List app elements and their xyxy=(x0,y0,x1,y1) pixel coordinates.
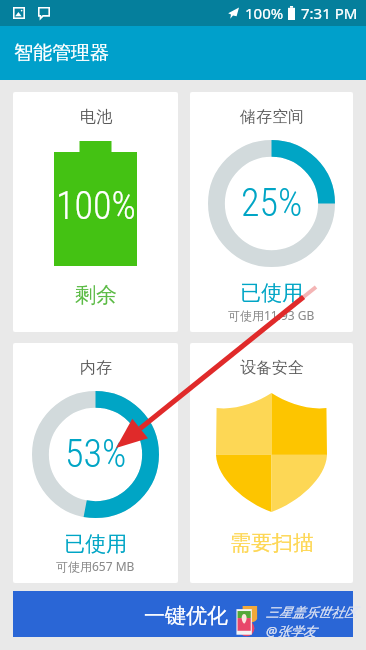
staticText: 已使用 xyxy=(64,531,127,557)
button[interactable]: 电池 xyxy=(13,92,178,332)
staticText: @张学友 xyxy=(266,622,317,640)
staticText: 储存空间 xyxy=(240,107,304,127)
button[interactable]: 储存空间 xyxy=(190,92,353,332)
button[interactable]: 智能管理器 xyxy=(0,26,366,80)
staticText: 内存 xyxy=(80,358,112,378)
staticText: 53% xyxy=(65,432,127,477)
staticText: 7:31 PM xyxy=(301,3,358,23)
staticText: 100% xyxy=(56,184,136,229)
staticText: 三星盖乐世社区 xyxy=(266,604,357,620)
staticText: 25% xyxy=(241,181,303,226)
staticText: 已使用 xyxy=(240,280,303,306)
staticText: 智能管理器 xyxy=(14,41,109,65)
staticText: 一键优化 xyxy=(144,603,228,629)
staticText: 电池 xyxy=(80,107,112,127)
staticText: 剩余 xyxy=(75,282,117,308)
staticText: 可使用657 MB xyxy=(56,558,135,574)
button[interactable]: 一键优化 xyxy=(13,591,353,637)
button[interactable]: 设备安全 xyxy=(190,343,353,583)
staticText: 100% xyxy=(245,3,284,23)
staticText: 设备安全 xyxy=(240,358,304,378)
staticText: 可使用11.93 GB xyxy=(228,307,315,323)
button[interactable]: 内存 xyxy=(13,343,178,583)
staticText: 需要扫描 xyxy=(230,530,314,556)
